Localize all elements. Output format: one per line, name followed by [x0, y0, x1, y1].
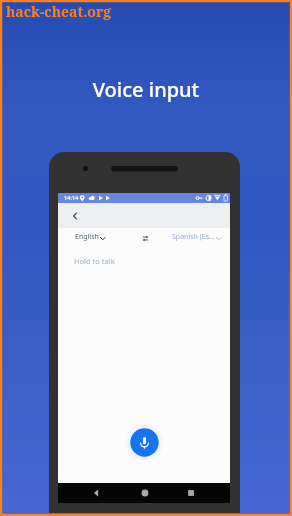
staticText: hack-cheat.org — [6, 2, 112, 21]
staticText: Spanish (Es... — [172, 232, 215, 242]
staticText: Voice input — [0, 76, 292, 103]
button[interactable]: Hold to talk — [126, 424, 163, 461]
button[interactable]: Spanish (Es... — [172, 232, 221, 242]
staticText: Hold to talk — [74, 256, 115, 266]
staticText: 14:14 — [64, 194, 79, 202]
button[interactable]: Home — [137, 485, 153, 501]
button[interactable]: Swap languages — [138, 231, 152, 245]
staticText: English — [75, 232, 99, 242]
button[interactable]: Back — [88, 485, 104, 501]
button[interactable]: Back — [67, 208, 83, 224]
button[interactable]: English — [75, 232, 105, 242]
button[interactable]: Recents — [183, 485, 199, 501]
